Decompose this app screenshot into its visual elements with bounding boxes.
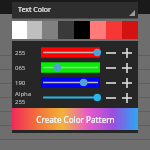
staticText: Create Color Pattern: [36, 114, 115, 125]
staticText: Alpha 255: [15, 90, 41, 105]
button[interactable]: Decrease 065: [103, 60, 119, 75]
button[interactable]: Decrease Alpha 255: [103, 90, 119, 105]
staticText: 190: [15, 79, 26, 87]
staticText: Text Color: [18, 5, 51, 15]
button[interactable]: [41, 76, 100, 89]
button[interactable]: Increase 190: [119, 75, 135, 90]
button[interactable]: [41, 46, 100, 59]
staticText: 065: [15, 64, 26, 72]
button[interactable]: [41, 91, 100, 104]
staticText: 255: [15, 49, 26, 57]
button[interactable]: Increase 255: [119, 45, 135, 60]
button[interactable]: Create Color Pattern: [12, 108, 138, 130]
button[interactable]: Decrease 190: [103, 75, 119, 90]
button[interactable]: Increase 065: [119, 60, 135, 75]
button[interactable]: Decrease 255: [103, 45, 119, 60]
button[interactable]: Text Color: [12, 2, 138, 18]
button[interactable]: Increase Alpha 255: [119, 90, 135, 105]
button[interactable]: [41, 61, 100, 74]
